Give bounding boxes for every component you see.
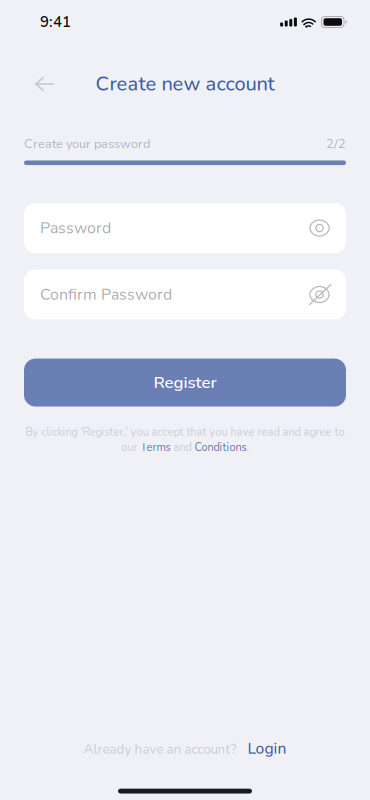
staticText: Conditions (194, 440, 246, 455)
button[interactable]: Hide password (293, 270, 346, 320)
staticText: 9:41 (40, 12, 71, 32)
staticText: Create your password (24, 135, 150, 152)
button[interactable]: Show password (293, 203, 346, 253)
button[interactable]: Terms (140, 440, 170, 455)
staticText: Confirm Password (40, 284, 172, 305)
staticText: and (170, 440, 194, 455)
staticText: Create new account (95, 70, 274, 98)
staticText: Password (40, 217, 111, 239)
staticText: 2/2 (326, 135, 346, 152)
staticText: By clicking 'Register,' you accept that … (25, 425, 344, 440)
staticText: our (121, 440, 140, 455)
staticText: Register (153, 371, 216, 394)
staticText: Login (247, 738, 286, 759)
button[interactable]: Conditions (194, 440, 246, 455)
button[interactable]: Back (23, 62, 67, 106)
staticText: . (246, 440, 248, 455)
button[interactable]: Register (24, 359, 346, 407)
button[interactable]: Login (236, 738, 286, 759)
staticText: Already have an account? (83, 740, 236, 758)
staticText: Terms (140, 440, 170, 455)
